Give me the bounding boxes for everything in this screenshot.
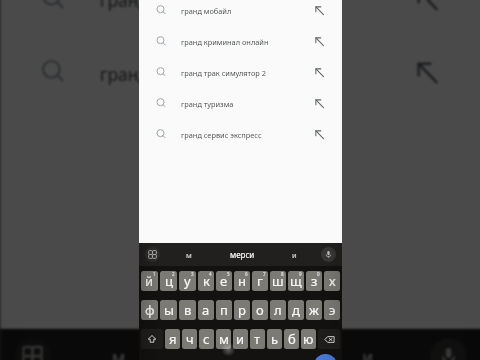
staticText: 4 xyxy=(209,271,212,277)
button[interactable]: о xyxy=(252,300,268,320)
staticText: й xyxy=(145,272,154,290)
staticText: ж xyxy=(309,301,319,319)
staticText: гранд туризма xyxy=(181,99,234,109)
button[interactable]: т xyxy=(250,329,265,349)
staticText: и xyxy=(362,345,374,360)
staticText: мерси xyxy=(216,343,275,360)
staticText: а xyxy=(202,301,210,319)
staticText: г xyxy=(257,272,263,290)
staticText: б xyxy=(288,330,296,348)
button[interactable]: ж xyxy=(306,300,322,320)
button[interactable]: Search xyxy=(314,354,337,360)
staticText: п xyxy=(220,301,228,319)
button[interactable]: гранд сервис экспресс xyxy=(139,119,342,150)
staticText: гранд сервис экспресс xyxy=(181,130,262,140)
staticText: гранд сервис экспресс xyxy=(100,62,291,85)
button[interactable]: и xyxy=(233,329,248,349)
staticText: у xyxy=(184,272,191,290)
button[interactable]: гранд туризма xyxy=(1,0,480,36)
button[interactable]: н xyxy=(234,271,250,291)
button[interactable]: щ xyxy=(288,271,304,291)
button[interactable]: к xyxy=(198,271,214,291)
button[interactable]: р xyxy=(234,300,250,320)
button[interactable]: ь xyxy=(267,329,282,349)
staticText: ш xyxy=(272,272,284,290)
staticText: 7 xyxy=(263,271,266,277)
button[interactable]: д xyxy=(288,300,304,320)
staticText: х xyxy=(329,272,336,290)
button[interactable]: ш xyxy=(270,271,286,291)
button[interactable]: л xyxy=(270,300,286,320)
button[interactable]: г xyxy=(252,271,268,291)
staticText: л xyxy=(274,301,282,319)
button[interactable]: с xyxy=(199,329,214,349)
staticText: 1 xyxy=(153,271,156,277)
staticText: е xyxy=(220,272,228,290)
button[interactable]: з xyxy=(306,271,322,291)
staticText: гранд мобайл xyxy=(181,6,232,16)
button[interactable]: ф xyxy=(141,300,158,320)
button[interactable]: гранд трак симулятор 2 xyxy=(139,57,342,88)
staticText: э xyxy=(329,301,336,319)
button[interactable]: в xyxy=(179,300,196,320)
button[interactable]: Shift xyxy=(141,329,163,349)
staticText: м xyxy=(219,330,229,348)
staticText: ч xyxy=(186,330,194,348)
button[interactable]: б xyxy=(284,329,299,349)
staticText: 2 xyxy=(172,271,175,277)
button[interactable]: й xyxy=(141,271,158,291)
staticText: т xyxy=(254,330,261,348)
staticText: с xyxy=(203,330,210,348)
staticText: ц xyxy=(165,272,173,290)
staticText: о xyxy=(256,301,264,319)
button[interactable]: Backspace xyxy=(318,329,340,349)
button[interactable]: гранд мобайл xyxy=(139,0,342,26)
staticText: щ xyxy=(290,272,302,290)
button[interactable]: Keyboard settings xyxy=(145,247,160,262)
button[interactable]: Keyboard settings xyxy=(15,338,50,360)
button[interactable]: м xyxy=(216,329,231,349)
button[interactable]: я xyxy=(165,329,180,349)
button[interactable]: Voice input xyxy=(431,338,466,360)
staticText: гранд криминал онлайн xyxy=(181,37,269,47)
staticText: и xyxy=(236,330,245,348)
staticText: 8 xyxy=(281,271,284,277)
staticText: н xyxy=(238,272,246,290)
staticText: 3 xyxy=(191,271,194,277)
staticText: 5 xyxy=(227,271,230,277)
staticText: м xyxy=(186,250,192,260)
staticText: з xyxy=(311,272,318,290)
staticText: 9 xyxy=(299,271,302,277)
staticText: ь xyxy=(271,330,279,348)
button[interactable]: гранд сервис экспресс xyxy=(1,36,480,109)
button[interactable]: а xyxy=(198,300,214,320)
staticText: и xyxy=(292,250,297,260)
staticText: м xyxy=(112,345,126,360)
staticText: мерси xyxy=(230,249,255,260)
button[interactable]: э xyxy=(324,300,340,320)
button[interactable]: ц xyxy=(160,271,177,291)
staticText: гранд туризма xyxy=(100,0,225,12)
button[interactable]: Voice input xyxy=(321,247,336,262)
staticText: к xyxy=(203,272,210,290)
button[interactable]: гранд криминал онлайн xyxy=(139,26,342,57)
staticText: ф xyxy=(145,301,155,319)
staticText: р xyxy=(238,301,246,319)
button[interactable]: ы xyxy=(160,300,177,320)
staticText: я xyxy=(169,330,177,348)
staticText: гранд трак симулятор 2 xyxy=(181,68,266,78)
button[interactable]: ю xyxy=(301,329,316,349)
staticText: д xyxy=(292,301,300,319)
button[interactable]: ч xyxy=(182,329,197,349)
staticText: ю xyxy=(303,330,314,348)
staticText: 6 xyxy=(245,271,248,277)
button[interactable]: п xyxy=(216,300,232,320)
button[interactable]: х xyxy=(324,271,340,291)
staticText: 0 xyxy=(317,271,320,277)
staticText: ы xyxy=(164,301,174,319)
button[interactable]: гранд туризма xyxy=(139,88,342,119)
button[interactable]: е xyxy=(216,271,232,291)
staticText: в xyxy=(184,301,192,319)
button[interactable]: у xyxy=(179,271,196,291)
